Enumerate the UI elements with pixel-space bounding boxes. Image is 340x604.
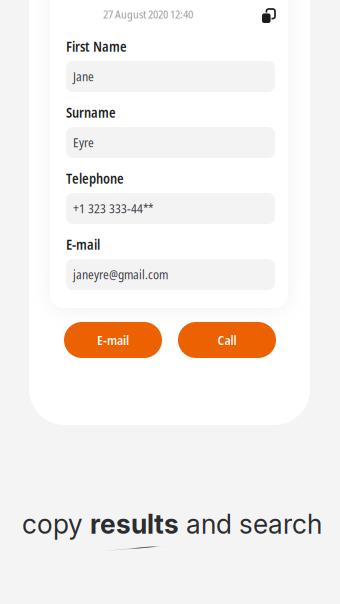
staticText: Surname [66,103,116,122]
button[interactable]: E-mail [64,322,162,358]
button[interactable]: Call [178,322,276,358]
staticText: E-mail [66,235,100,254]
staticText: First Name [66,37,127,56]
staticText: Telephone [66,169,124,188]
staticText: +1 323 333-44** [73,200,153,217]
staticText: results [90,508,179,540]
staticText: 27 August 2020 12:40 [103,6,193,22]
staticText: copy [22,508,90,540]
staticText: Eyre [73,134,94,151]
button[interactable]: Copy [262,8,275,23]
staticText: and search [179,508,322,540]
staticText: Call [217,331,236,349]
staticText: E-mail [97,331,129,349]
staticText: Jane [73,68,94,85]
staticText: janeyre@gmail.com [73,266,168,283]
